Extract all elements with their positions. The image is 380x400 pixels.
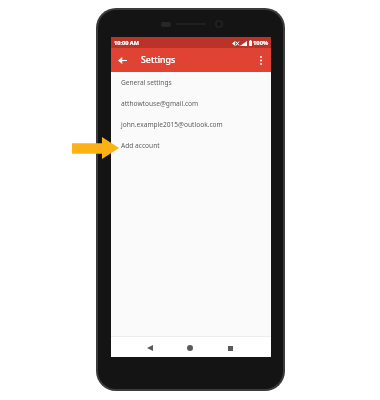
staticText: Add account [121,141,160,150]
button[interactable]: More options [253,52,269,68]
button[interactable]: General settings [111,72,271,93]
button[interactable]: Home [170,338,210,358]
button[interactable]: atthowtouse@gmail.com [111,93,271,114]
staticText: Settings [141,54,176,66]
button[interactable]: Recent apps [210,338,250,358]
staticText: atthowtouse@gmail.com [121,99,199,108]
button[interactable]: Add account [111,135,271,156]
button[interactable]: Back [129,338,170,358]
staticText: General settings [121,78,172,87]
staticText: 100% [253,39,269,47]
staticText: 10:00 AM [114,39,139,47]
staticText: john.example2015@outlook.com [121,120,223,129]
button[interactable]: Navigate up [114,52,130,68]
button[interactable]: john.example2015@outlook.com [111,114,271,135]
